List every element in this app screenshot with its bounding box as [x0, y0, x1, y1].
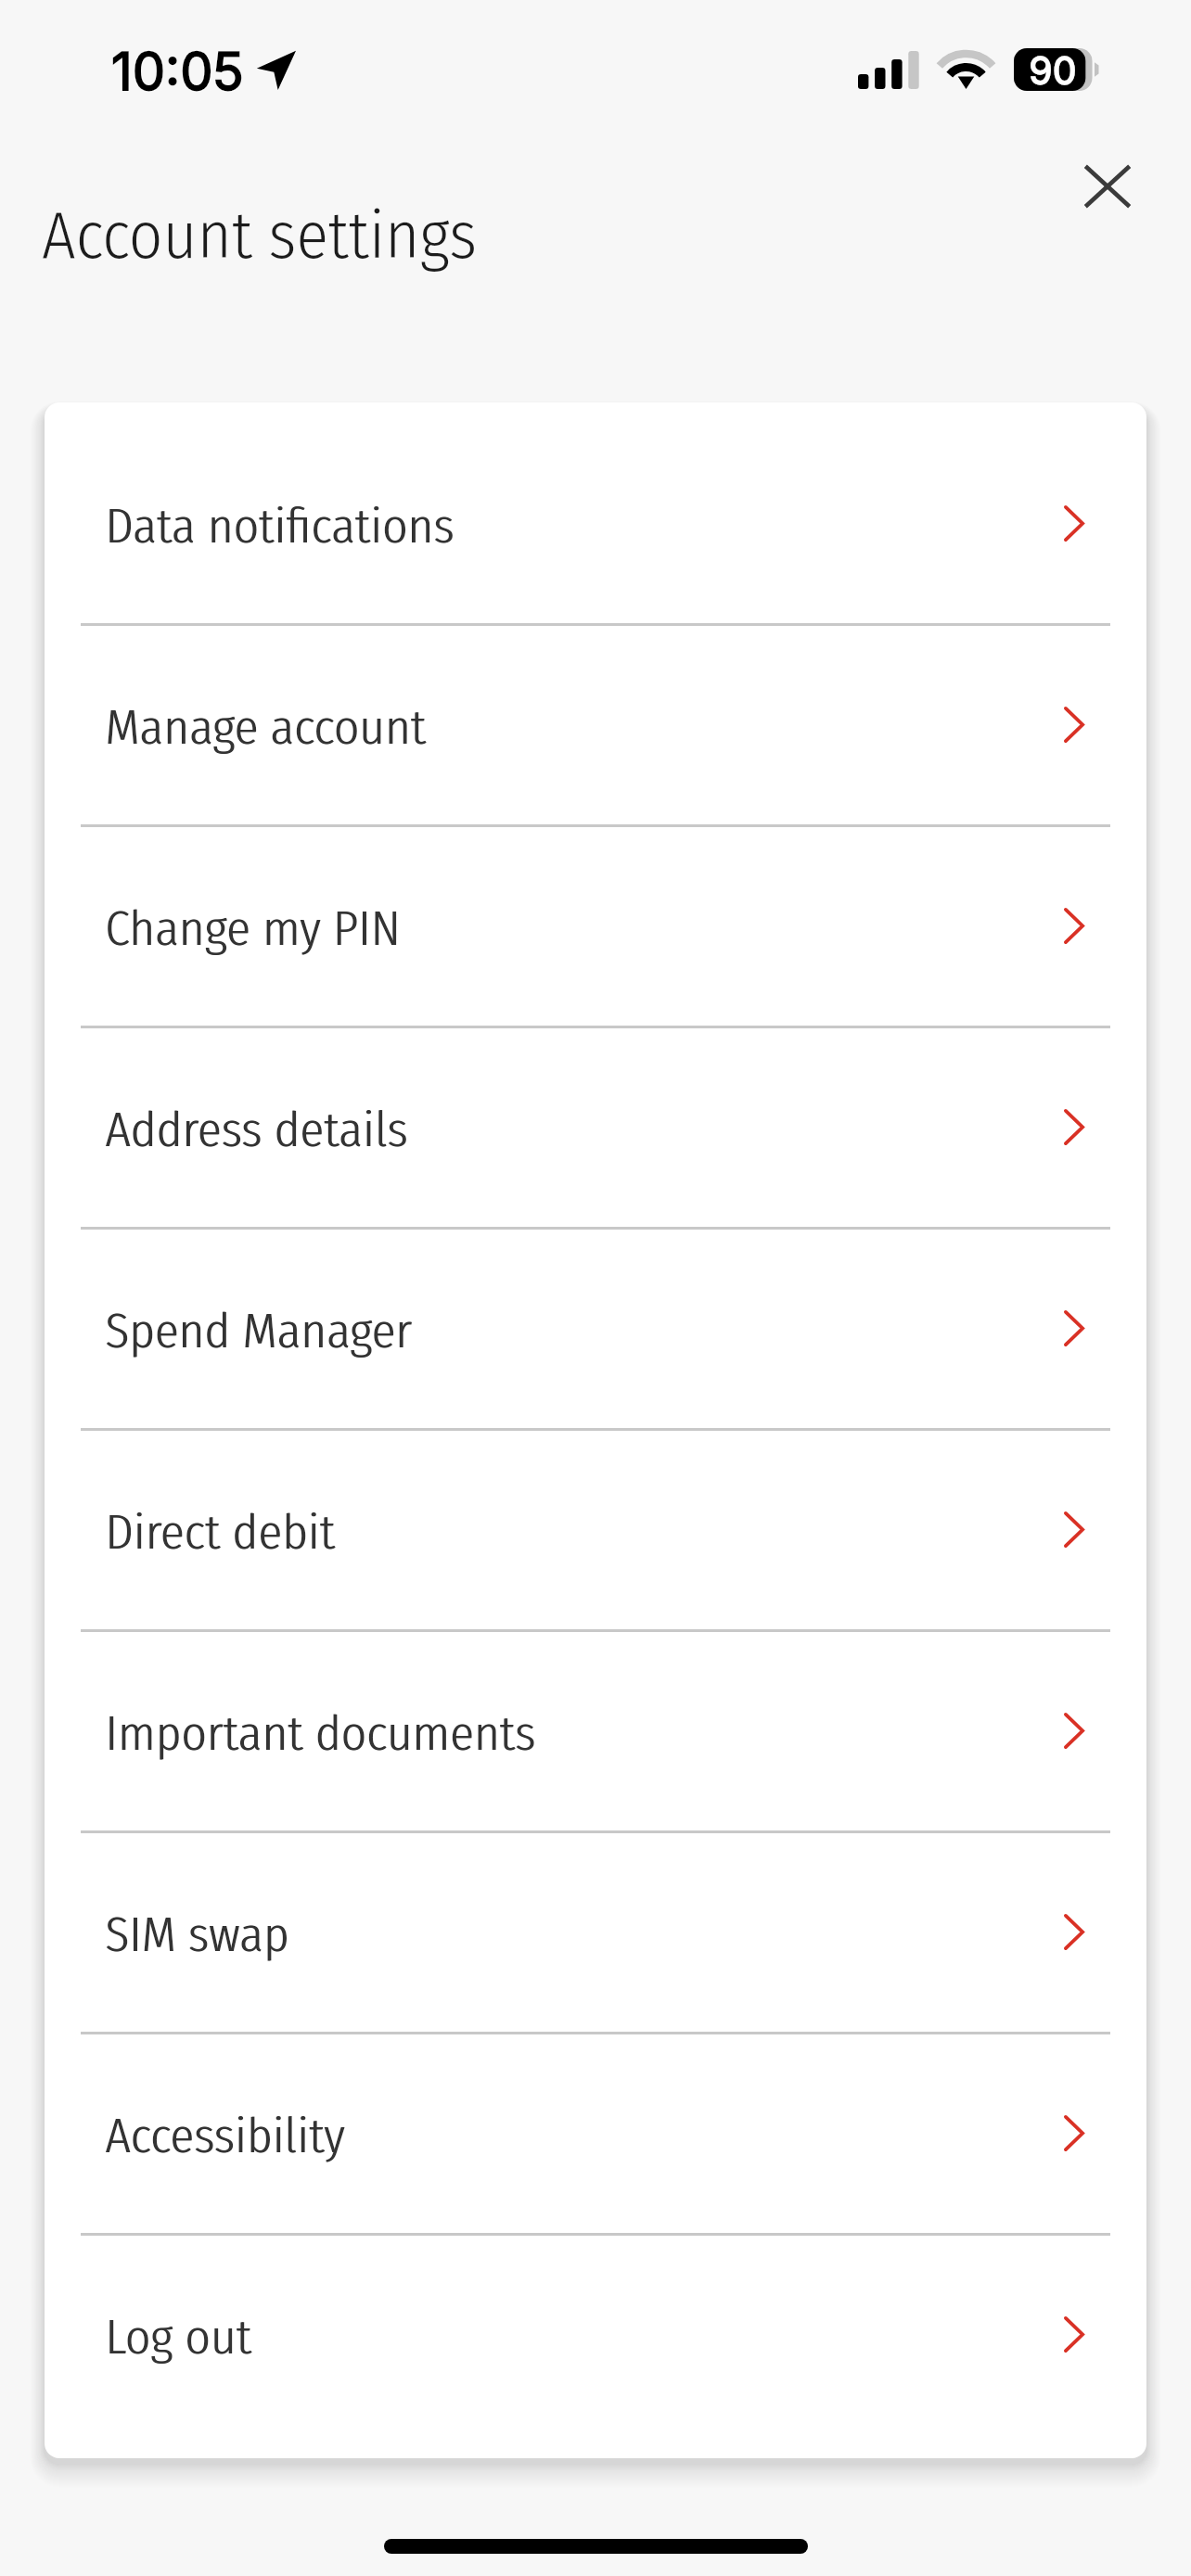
staticText: 10:05 [111, 40, 244, 103]
button[interactable]: Data notifications [45, 425, 1146, 623]
button[interactable]: Close [1052, 131, 1163, 242]
staticText: Accessibility [105, 2106, 345, 2165]
button[interactable]: Important documents [45, 1632, 1146, 1830]
button[interactable]: Accessibility [45, 2034, 1146, 2233]
button[interactable]: Spend Manager [45, 1230, 1146, 1428]
button[interactable]: Log out [45, 2236, 1146, 2434]
staticText: 90 [1029, 47, 1077, 94]
staticText: Change my PIN [105, 899, 401, 958]
button[interactable]: Manage account [45, 626, 1146, 824]
button[interactable]: Direct debit [45, 1431, 1146, 1629]
button[interactable]: SIM swap [45, 1833, 1146, 2032]
staticText: Important documents [105, 1703, 536, 1763]
staticText: Direct debit [105, 1502, 335, 1562]
staticText: Manage account [105, 697, 426, 757]
staticText: Data notifications [105, 496, 455, 555]
staticText: Address details [105, 1100, 408, 1159]
button[interactable]: Change my PIN [45, 827, 1146, 1026]
staticText: Spend Manager [105, 1301, 412, 1360]
staticText: SIM swap [105, 1905, 289, 1964]
staticText: Log out [105, 2307, 251, 2366]
button[interactable]: Address details [45, 1028, 1146, 1227]
staticText: Account settings [42, 197, 478, 275]
